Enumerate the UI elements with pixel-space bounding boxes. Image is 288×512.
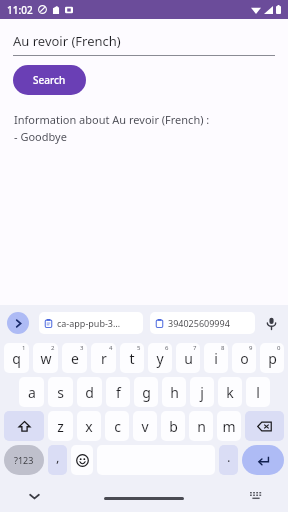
button[interactable]: Voice input bbox=[261, 313, 281, 333]
button[interactable]: a bbox=[19, 377, 44, 407]
staticText: 2 bbox=[51, 344, 55, 352]
button[interactable]: v bbox=[133, 411, 157, 441]
button[interactable]: , bbox=[48, 445, 67, 475]
staticText: k bbox=[226, 383, 234, 402]
staticText: p bbox=[268, 349, 277, 368]
staticText: ca-app-pub-3… bbox=[57, 317, 121, 329]
staticText: ?123 bbox=[14, 454, 34, 466]
button[interactable]: i bbox=[204, 343, 228, 373]
staticText: r bbox=[101, 349, 107, 368]
staticText: y bbox=[156, 349, 164, 368]
button[interactable]: Back bbox=[22, 484, 46, 508]
button[interactable]: x bbox=[77, 411, 101, 441]
button[interactable]: . bbox=[219, 445, 238, 475]
staticText: b bbox=[169, 417, 178, 436]
button[interactable]: z bbox=[48, 411, 73, 441]
staticText: o bbox=[240, 349, 249, 368]
button[interactable]: s bbox=[48, 377, 73, 407]
staticText: e bbox=[71, 349, 79, 368]
staticText: 7 bbox=[193, 344, 197, 352]
staticText: g bbox=[142, 383, 151, 402]
staticText: w bbox=[40, 349, 52, 368]
button[interactable]: q bbox=[4, 343, 29, 373]
staticText: 0 bbox=[277, 344, 281, 352]
button[interactable]: p bbox=[260, 343, 284, 373]
staticText: q bbox=[12, 349, 21, 368]
button[interactable]: j bbox=[190, 377, 214, 407]
button[interactable]: ca-app-pub-3… bbox=[39, 312, 143, 334]
staticText: 11:02 bbox=[7, 3, 33, 17]
button[interactable]: Emoji bbox=[71, 445, 93, 475]
button[interactable]: n bbox=[189, 411, 213, 441]
staticText: x bbox=[85, 417, 93, 436]
staticText: 4 bbox=[109, 344, 113, 352]
button[interactable]: b bbox=[161, 411, 185, 441]
button[interactable]: e bbox=[62, 343, 87, 373]
button[interactable]: Home bbox=[104, 497, 184, 500]
staticText: m bbox=[222, 417, 236, 436]
staticText: 1 bbox=[22, 344, 26, 352]
button[interactable]: Hide keyboard bbox=[244, 484, 268, 508]
button[interactable]: f bbox=[106, 377, 130, 407]
staticText: c bbox=[114, 417, 121, 436]
staticText: , bbox=[56, 448, 60, 466]
button[interactable]: 394025609994 bbox=[150, 312, 255, 334]
button[interactable]: o bbox=[232, 343, 256, 373]
staticText: j bbox=[200, 383, 204, 402]
staticText: a bbox=[28, 383, 36, 402]
button[interactable]: m bbox=[217, 411, 241, 441]
staticText: Search bbox=[33, 73, 66, 87]
staticText: z bbox=[57, 417, 64, 436]
button[interactable]: Expand suggestions bbox=[7, 312, 29, 334]
button[interactable]: Enter bbox=[242, 445, 284, 475]
button[interactable]: h bbox=[162, 377, 186, 407]
button[interactable]: c bbox=[105, 411, 129, 441]
staticText: - Goodbye bbox=[14, 129, 67, 144]
staticText: t bbox=[129, 349, 135, 368]
staticText: d bbox=[85, 383, 94, 402]
staticText: 8 bbox=[221, 344, 225, 352]
button[interactable]: u bbox=[176, 343, 200, 373]
button[interactable]: ?123 bbox=[4, 445, 44, 475]
staticText: f bbox=[116, 383, 121, 402]
staticText: s bbox=[57, 383, 64, 402]
button[interactable]: w bbox=[33, 343, 58, 373]
staticText: 9 bbox=[249, 344, 253, 352]
staticText: 6 bbox=[165, 344, 169, 352]
staticText: Au revoir (French) bbox=[13, 32, 121, 50]
staticText: h bbox=[170, 383, 179, 402]
staticText: . bbox=[227, 448, 231, 466]
button[interactable]: d bbox=[77, 377, 102, 407]
staticText: v bbox=[141, 417, 149, 436]
button[interactable]: l bbox=[246, 377, 270, 407]
staticText: u bbox=[184, 349, 193, 368]
button[interactable]: t bbox=[120, 343, 144, 373]
staticText: 394025609994 bbox=[168, 317, 230, 329]
staticText: l bbox=[256, 383, 260, 402]
button[interactable]: Shift bbox=[4, 411, 44, 441]
staticText: Information about Au revoir (French) : bbox=[14, 112, 210, 127]
staticText: 5 bbox=[137, 344, 141, 352]
staticText: n bbox=[197, 417, 206, 436]
button[interactable]: r bbox=[91, 343, 116, 373]
button[interactable]: Backspace bbox=[245, 411, 284, 441]
staticText: i bbox=[214, 349, 218, 368]
button[interactable]: Search bbox=[13, 65, 86, 95]
button[interactable]: k bbox=[218, 377, 242, 407]
staticText: 3 bbox=[80, 344, 84, 352]
button[interactable]: g bbox=[134, 377, 158, 407]
button[interactable]: y bbox=[148, 343, 172, 373]
